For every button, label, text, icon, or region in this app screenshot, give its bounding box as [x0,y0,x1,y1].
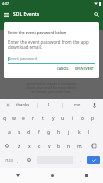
staticText: ?123 [5,158,13,163]
staticText: y [52,115,55,122]
button[interactable]: Voice input [90,99,99,111]
staticText: OPEN EVENT [75,67,94,71]
button[interactable]: Close keyboard [0,168,35,183]
button[interactable]: w [9,111,18,125]
staticText: Enter the event password below [8,30,67,35]
button[interactable]: Comma [15,153,21,167]
staticText: o [81,115,85,122]
staticText: x [28,143,31,150]
button[interactable]: g [44,125,54,139]
button[interactable]: s [14,125,24,139]
staticText: me [74,102,81,108]
button[interactable]: Open navigation menu [0,8,13,21]
button[interactable]: k [74,125,84,139]
button[interactable]: o [78,111,88,125]
staticText: z [18,143,21,150]
button[interactable]: thanks [12,99,34,111]
button[interactable]: Home [35,168,69,183]
button[interactable]: d [24,125,34,139]
button[interactable]: r [28,111,38,125]
staticText: n [67,143,71,150]
button[interactable]: h [54,125,64,139]
staticText: b [57,143,61,150]
button[interactable]: v [44,139,54,153]
button[interactable]: c [34,139,44,153]
staticText: Enter the event password from the app do… [8,39,95,50]
button[interactable]: i [68,111,78,125]
staticText: a [8,129,11,136]
staticText: p [91,115,95,122]
button[interactable]: q [0,111,9,125]
button[interactable]: y [48,111,58,125]
button[interactable]: Recent apps [69,168,103,183]
staticText: f [38,129,40,136]
staticText: w [12,115,16,122]
staticText: SDL Events [13,11,40,18]
staticText: d [27,129,31,136]
button[interactable]: p [88,111,98,125]
staticText: i [72,115,74,122]
button[interactable]: Search [90,8,103,21]
staticText: 4:07 [2,1,9,6]
button[interactable]: More suggestions [0,99,15,111]
staticText: v [48,143,51,150]
staticText: I [48,102,50,108]
button[interactable]: u [58,111,68,125]
staticText: t [42,115,44,122]
staticText: CANCEL [57,67,69,71]
button[interactable]: l [84,125,94,139]
staticText: Some events require a password. Check yo… [26,82,77,94]
button[interactable]: m [74,139,84,153]
button[interactable]: CANCEL [55,65,71,73]
button[interactable]: t [38,111,48,125]
staticText: h [57,129,61,136]
button[interactable]: f [34,125,44,139]
staticText: . [80,158,82,163]
button[interactable]: b [54,139,64,153]
button[interactable]: Backspace [84,139,103,153]
staticText: , [17,158,19,163]
button[interactable]: Emoji [23,153,35,167]
button[interactable]: ?123 [0,153,17,167]
button[interactable]: e [18,111,28,125]
staticText: thanks [16,102,30,108]
button[interactable]: Shift [0,139,14,153]
staticText: m [77,143,82,150]
button[interactable]: me [62,99,93,111]
button[interactable]: a [4,125,14,139]
staticText: q [3,115,7,122]
staticText: r [32,115,35,122]
button[interactable]: Enter [87,156,100,164]
button[interactable]: I [37,99,61,111]
button[interactable]: OPEN EVENT [73,65,96,73]
staticText: e [22,115,25,122]
staticText: Event password [9,56,38,61]
staticText: l [88,129,90,136]
button[interactable]: x [24,139,34,153]
button[interactable]: n [64,139,74,153]
button[interactable]: z [14,139,24,153]
staticText: k [78,129,81,136]
staticText: g [47,129,51,136]
button[interactable]: j [64,125,74,139]
staticText: u [61,115,65,122]
staticText: s [18,129,21,136]
staticText: c [38,143,41,150]
staticText: j [68,129,70,136]
